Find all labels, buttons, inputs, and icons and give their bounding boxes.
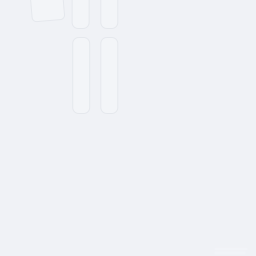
button[interactable]: Column one, lower segment bbox=[73, 37, 90, 113]
